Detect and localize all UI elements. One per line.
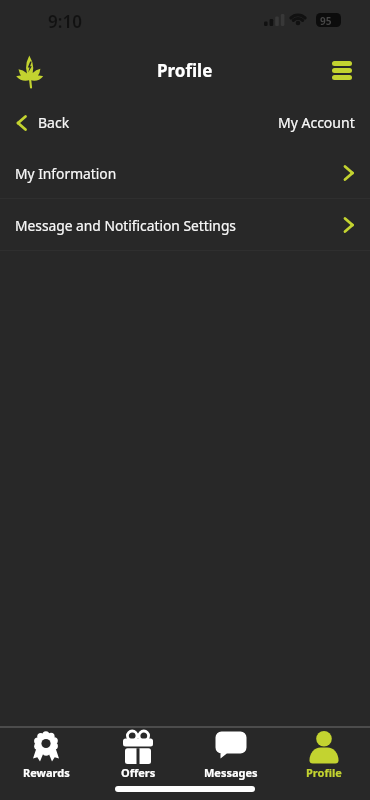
button[interactable]: Messages <box>184 731 277 780</box>
staticText: Rewards <box>23 765 70 780</box>
staticText: 9:10 <box>48 10 82 33</box>
button[interactable] <box>324 52 360 88</box>
staticText: Profile <box>306 765 342 780</box>
button[interactable]: Profile <box>277 731 370 780</box>
button[interactable]: Message and Notification Settings <box>0 199 370 251</box>
button[interactable]: Back <box>0 113 70 132</box>
staticText: Offers <box>121 765 156 780</box>
button[interactable]: Offers <box>92 731 184 780</box>
staticText: Profile <box>157 59 213 82</box>
staticText: 95 <box>320 14 332 28</box>
staticText: Messages <box>204 765 258 780</box>
staticText: My Account <box>278 113 355 132</box>
staticText: My Information <box>15 164 117 183</box>
staticText: Back <box>38 113 70 132</box>
button[interactable]: Rewards <box>0 731 92 780</box>
button[interactable]: My Information <box>0 147 370 199</box>
staticText: Message and Notification Settings <box>15 216 236 235</box>
